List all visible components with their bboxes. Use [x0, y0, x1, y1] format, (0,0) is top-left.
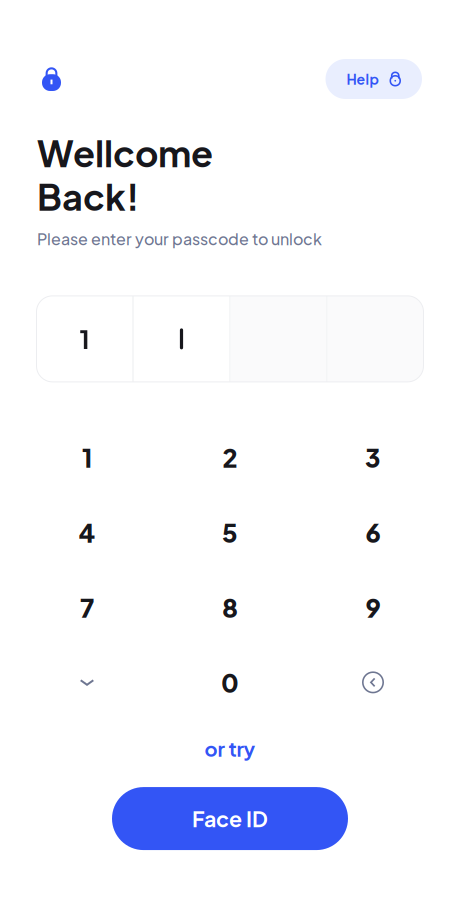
button[interactable]: Hide keypad	[15, 645, 158, 720]
staticText: 1	[82, 441, 92, 473]
button[interactable]: 5	[158, 495, 301, 570]
staticText: 9	[365, 591, 380, 623]
button[interactable]: Delete	[301, 645, 444, 720]
button[interactable]: 2	[158, 420, 301, 495]
button[interactable]: 8	[158, 570, 301, 645]
staticText: 7	[80, 591, 94, 623]
staticText: 0	[221, 666, 239, 698]
button[interactable]: Face ID	[112, 787, 348, 850]
button[interactable]: 4	[15, 495, 158, 570]
staticText: Face ID	[192, 805, 268, 832]
staticText: Please enter your passcode to unlock	[37, 229, 322, 249]
staticText: Wellcome	[37, 130, 213, 175]
staticText: Help	[346, 70, 378, 88]
staticText: 5	[222, 516, 238, 548]
staticText: 8	[222, 591, 238, 623]
button[interactable]: 1	[15, 420, 158, 495]
staticText: 3	[365, 441, 381, 473]
button[interactable]: 3	[301, 420, 444, 495]
button[interactable]: or try	[194, 733, 265, 764]
staticText: 6	[365, 516, 380, 548]
staticText: 4	[78, 516, 95, 548]
staticText: Back!	[37, 173, 139, 219]
button[interactable]: 0	[158, 645, 301, 720]
button[interactable]: 7	[15, 570, 158, 645]
button[interactable]: 9	[301, 570, 444, 645]
staticText: or try	[204, 736, 255, 761]
button[interactable]: 6	[301, 495, 444, 570]
staticText: 1	[79, 323, 89, 355]
staticText: 2	[222, 441, 237, 473]
button[interactable]: Help	[325, 59, 422, 99]
